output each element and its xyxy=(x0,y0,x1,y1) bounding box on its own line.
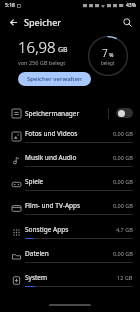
staticText: 0,00 GB xyxy=(113,202,133,209)
staticText: 0,00 GB xyxy=(113,250,133,257)
staticText: 0,00 GB xyxy=(113,178,133,185)
staticText: 4,7 GB xyxy=(116,226,133,233)
staticText: Musik und Audio xyxy=(25,153,113,162)
staticText: GB xyxy=(58,45,68,55)
staticText: Speichermanager xyxy=(25,109,108,118)
staticText: 0,00 GB xyxy=(113,154,133,161)
button[interactable]: Speicher verwalten xyxy=(18,72,91,86)
staticText: 0,00 GB xyxy=(113,130,133,137)
staticText: Sonstige Apps xyxy=(25,225,116,234)
staticText: Fotos und Videos xyxy=(25,129,113,138)
button[interactable]: Fotos und Videos xyxy=(0,124,140,148)
staticText: 43% xyxy=(126,2,136,9)
staticText: von 256 GB belegt xyxy=(18,59,66,66)
button[interactable]: Suchen xyxy=(117,12,137,32)
button[interactable]: Film- und TV-Apps xyxy=(0,196,140,220)
staticText: 16,98 xyxy=(18,37,56,57)
button[interactable]: Dateien xyxy=(0,244,140,268)
staticText: 5:18 xyxy=(5,2,15,9)
button[interactable] xyxy=(116,108,133,118)
staticText: Speicher verwalten xyxy=(27,75,82,83)
staticText: Speicher xyxy=(24,16,62,28)
staticText: belegt xyxy=(101,60,115,66)
button[interactable]: Sonstige Apps xyxy=(0,220,140,244)
button[interactable]: Speichermanager xyxy=(0,102,140,124)
staticText: System xyxy=(25,273,117,282)
staticText: % xyxy=(108,52,114,59)
button[interactable]: Musik und Audio xyxy=(0,148,140,172)
button[interactable]: Zurück xyxy=(3,12,23,32)
button[interactable]: Spiele xyxy=(0,172,140,196)
staticText: Spiele xyxy=(25,177,113,186)
staticText: Film- und TV-Apps xyxy=(25,201,113,210)
staticText: Dateien xyxy=(25,249,113,258)
staticText: 12 GB xyxy=(117,274,133,281)
button[interactable]: System xyxy=(0,268,140,292)
staticText: 7 xyxy=(102,46,108,60)
